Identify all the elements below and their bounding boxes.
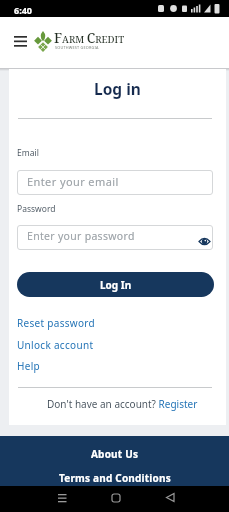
staticText: Log in — [94, 78, 141, 99]
button[interactable]: Don't have an account? Register — [47, 397, 198, 411]
button[interactable] — [10, 32, 31, 51]
staticText: Email — [17, 147, 39, 159]
staticText: Log In — [100, 278, 132, 292]
button[interactable]: Terms and Conditions — [59, 471, 171, 485]
button[interactable]: About Us — [91, 447, 139, 461]
staticText: Password — [17, 203, 56, 215]
button[interactable] — [77, 486, 153, 512]
staticText: SOUTHWEST GEORGIA — [55, 45, 99, 50]
staticText: FARM CREDIT — [54, 29, 125, 47]
button[interactable]: Log In — [17, 272, 214, 297]
button[interactable]: Help — [17, 359, 40, 373]
staticText: Enter your password — [27, 229, 135, 243]
button[interactable]: Enter your email — [17, 170, 213, 195]
button[interactable] — [0, 486, 77, 512]
button[interactable]: Reset password — [17, 316, 96, 330]
staticText: 6:40 — [14, 4, 32, 16]
button[interactable] — [196, 234, 213, 248]
button[interactable] — [153, 486, 229, 512]
button[interactable]: Enter your password — [17, 225, 213, 250]
staticText: Enter your email — [27, 174, 119, 189]
button[interactable]: Unlock account — [17, 338, 94, 352]
